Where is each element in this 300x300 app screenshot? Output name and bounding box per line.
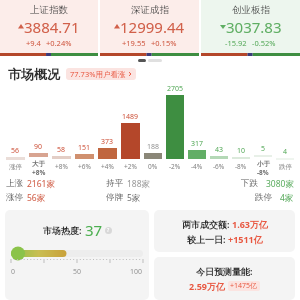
- staticText: +1475亿: [230, 281, 258, 291]
- staticText: 涨停: [9, 163, 22, 171]
- staticText: 较上一日:: [187, 233, 228, 245]
- staticText: 4家: [280, 192, 294, 204]
- button[interactable]: 创业板指: [201, 0, 300, 56]
- staticText: +8%: [55, 162, 68, 171]
- staticText: +6%: [78, 162, 91, 171]
- staticText: +9.4: [26, 38, 41, 48]
- staticText: 大于: [32, 160, 45, 168]
- button[interactable]: 说明: [105, 227, 112, 234]
- staticText: 持平: [106, 178, 123, 189]
- staticText: +4%: [101, 162, 114, 171]
- staticText: 100: [130, 267, 143, 277]
- staticText: 两市成交额:: [182, 218, 232, 230]
- staticText: ?: [107, 227, 110, 234]
- staticText: 今日预测量能:: [196, 265, 253, 277]
- staticText: +0.15%: [151, 38, 177, 48]
- staticText: 3884.71: [24, 17, 80, 37]
- staticText: 2.59万亿: [189, 280, 225, 292]
- staticText: 1489: [122, 112, 139, 122]
- staticText: 317: [191, 139, 204, 149]
- staticText: -15.92: [225, 38, 247, 48]
- staticText: 0: [11, 267, 16, 277]
- staticText: 4: [283, 147, 288, 157]
- staticText: 188家: [127, 178, 151, 190]
- staticText: 56: [11, 146, 20, 156]
- button[interactable]: 上证指数: [0, 0, 98, 56]
- staticText: 58: [57, 145, 66, 155]
- staticText: 12999.44: [120, 17, 185, 37]
- button[interactable]: 两市成交额:: [154, 210, 295, 252]
- button[interactable]: 市场热度:: [5, 210, 149, 300]
- staticText: 3080家: [266, 178, 294, 190]
- staticText: 90: [34, 142, 43, 152]
- staticText: 跌停: [255, 192, 272, 203]
- staticText: -8%: [257, 168, 269, 177]
- staticText: 151: [78, 143, 91, 153]
- button[interactable]: 今日预测量能:: [154, 257, 295, 300]
- staticText: -0.52%: [252, 38, 276, 48]
- staticText: +19.55: [122, 38, 146, 48]
- staticText: 10: [237, 146, 246, 156]
- staticText: 37: [85, 220, 103, 240]
- staticText: 2705: [167, 84, 184, 94]
- staticText: -2%: [169, 162, 181, 171]
- staticText: 50: [73, 267, 82, 277]
- staticText: +0.24%: [46, 38, 72, 48]
- staticText: -4%: [191, 162, 203, 171]
- staticText: 373: [101, 137, 114, 147]
- staticText: 上证指数: [30, 4, 68, 16]
- staticText: 77.73%用户看涨: [70, 69, 126, 79]
- staticText: -8%: [235, 162, 247, 171]
- staticText: 43: [215, 145, 224, 155]
- staticText: 涨停: [6, 192, 23, 203]
- staticText: 创业板指: [232, 4, 270, 16]
- button[interactable]: 深证成指: [100, 0, 199, 56]
- staticText: 3037.83: [226, 17, 282, 37]
- staticText: 小于: [257, 160, 270, 168]
- staticText: 5: [261, 144, 266, 154]
- staticText: 0%: [148, 162, 158, 171]
- button[interactable]: 77.73%用户看涨: [66, 68, 136, 80]
- staticText: 市场热度:: [43, 224, 82, 236]
- staticText: 5家: [127, 192, 141, 204]
- staticText: 跌停: [279, 163, 292, 171]
- staticText: 2161家: [27, 178, 55, 190]
- staticText: 停牌: [106, 192, 123, 203]
- staticText: 56家: [27, 192, 46, 204]
- staticText: +2%: [124, 162, 137, 171]
- staticText: 市场概况: [8, 66, 60, 82]
- staticText: 上涨: [6, 178, 23, 189]
- staticText: -6%: [213, 162, 225, 171]
- staticText: 下跌: [241, 178, 258, 189]
- staticText: +1511亿: [228, 233, 263, 245]
- staticText: +8%: [32, 168, 46, 177]
- staticText: 188: [147, 142, 160, 152]
- staticText: 深证成指: [131, 4, 169, 16]
- staticText: 1.63万亿: [232, 218, 268, 230]
